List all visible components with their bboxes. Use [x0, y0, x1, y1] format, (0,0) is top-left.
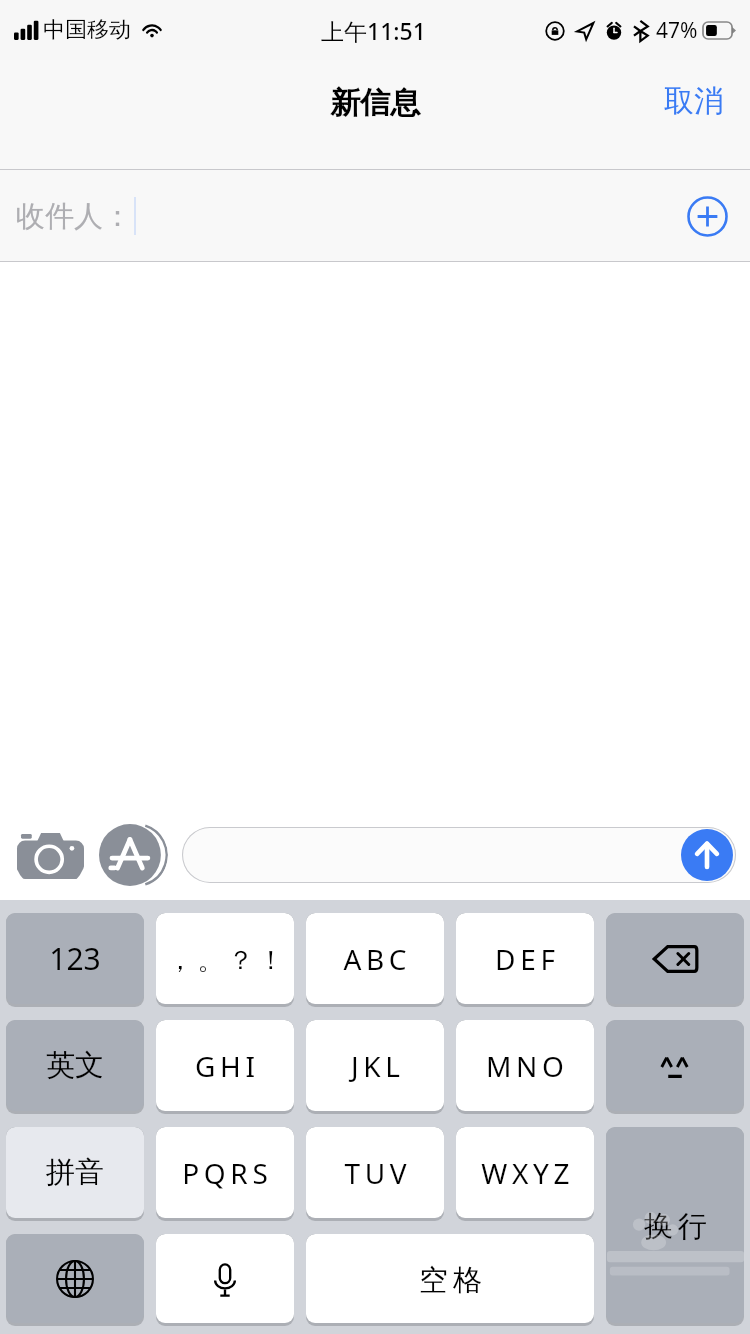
button[interactable]: App Store	[98, 820, 168, 890]
button[interactable]: 相机	[14, 819, 86, 891]
button[interactable]: 取消	[646, 72, 742, 130]
button[interactable]: 删除	[606, 913, 744, 1007]
button[interactable]: T U V	[306, 1127, 444, 1221]
staticText: T U V	[344, 1154, 407, 1192]
button[interactable]: 添加联系人	[683, 192, 731, 240]
button[interactable]: J K L	[306, 1020, 444, 1114]
staticText: D E F	[495, 940, 555, 978]
staticText: 取消	[664, 82, 724, 120]
button[interactable]: 空 格	[306, 1234, 594, 1326]
button[interactable]: 换 行	[606, 1127, 744, 1326]
button[interactable]: 切换键盘	[6, 1234, 144, 1326]
staticText: G H I	[195, 1047, 255, 1085]
staticText: 拼音	[46, 1154, 104, 1191]
staticText: 英文	[46, 1047, 104, 1084]
button[interactable]: W X Y Z	[456, 1127, 594, 1221]
button[interactable]: 发送	[681, 829, 733, 881]
staticText: 新信息	[330, 84, 420, 122]
button[interactable]: 发送	[182, 827, 736, 883]
staticText: 收件人：	[16, 198, 132, 235]
button[interactable]: M N O	[456, 1020, 594, 1114]
button[interactable]: P Q R S	[156, 1127, 294, 1221]
button[interactable]: A B C	[306, 913, 444, 1007]
button[interactable]: 颜文字	[606, 1020, 744, 1114]
button[interactable]: 123	[6, 913, 144, 1007]
staticText: ， 。 ？ ！	[167, 941, 284, 977]
staticText: J K L	[351, 1047, 400, 1085]
button[interactable]: 英文	[6, 1020, 144, 1114]
staticText: 中国移动	[43, 16, 131, 44]
button[interactable]: ， 。 ？ ！	[156, 913, 294, 1007]
staticText: M N O	[486, 1047, 564, 1085]
button[interactable]: D E F	[456, 913, 594, 1007]
button[interactable]: G H I	[156, 1020, 294, 1114]
staticText: 123	[49, 938, 101, 979]
staticText: A B C	[343, 940, 407, 978]
button[interactable]: 拼音	[6, 1127, 144, 1221]
staticText: 空 格	[419, 1259, 482, 1299]
staticText: P Q R S	[182, 1154, 268, 1192]
staticText: 上午11:51	[321, 15, 426, 46]
staticText: 换 行	[644, 1205, 707, 1245]
button[interactable]: 语音输入	[156, 1234, 294, 1326]
staticText: 47%	[656, 16, 698, 45]
staticText: W X Y Z	[481, 1154, 570, 1192]
